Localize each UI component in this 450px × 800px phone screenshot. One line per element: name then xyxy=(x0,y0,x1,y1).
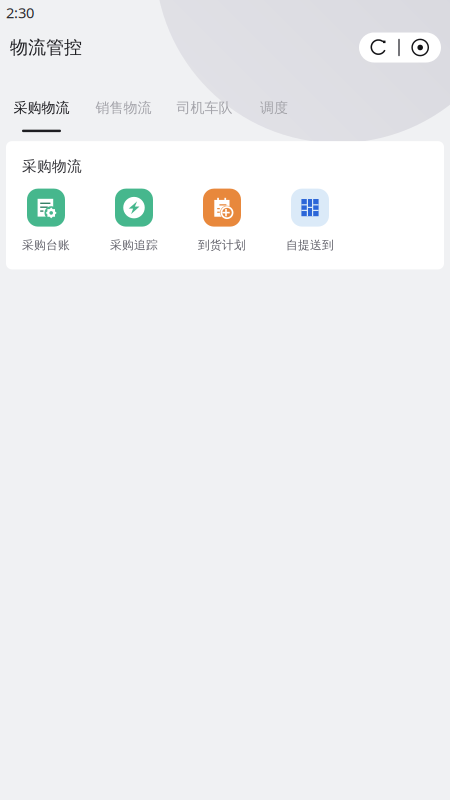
staticText: 采购台账 xyxy=(22,238,70,252)
staticText: 销售物流 xyxy=(95,99,151,117)
button[interactable]: 销售物流 xyxy=(95,99,151,132)
button[interactable]: 采购物流 xyxy=(13,99,69,132)
staticText: 采购物流 xyxy=(22,157,82,176)
staticText: 物流管控 xyxy=(10,36,82,59)
button[interactable]: 自提送到 xyxy=(266,189,354,252)
staticText: 采购物流 xyxy=(13,99,69,117)
button[interactable]: Refresh xyxy=(359,32,398,62)
button[interactable]: 到货计划 xyxy=(178,189,266,252)
staticText: 2:30 xyxy=(6,2,34,22)
button[interactable]: 采购台账 xyxy=(2,189,90,252)
staticText: 调度 xyxy=(260,99,288,117)
staticText: 自提送到 xyxy=(286,238,334,252)
staticText: 司机车队 xyxy=(176,99,232,117)
button[interactable]: 采购追踪 xyxy=(90,189,178,252)
button[interactable]: Locate xyxy=(400,32,441,62)
staticText: 到货计划 xyxy=(198,238,246,252)
staticText: 采购追踪 xyxy=(110,238,158,252)
button[interactable]: 调度 xyxy=(254,99,293,132)
button[interactable]: 司机车队 xyxy=(176,99,232,132)
